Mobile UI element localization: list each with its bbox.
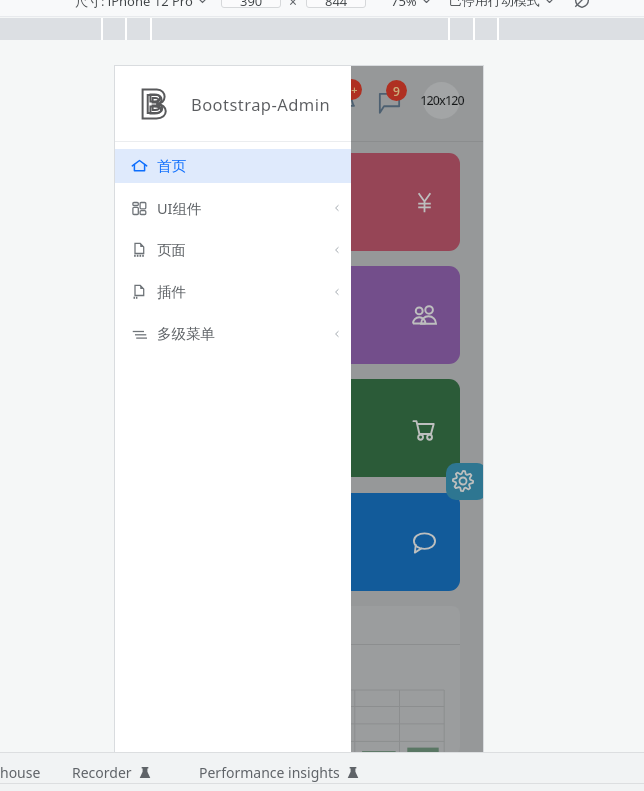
button[interactable]: [138, 606, 460, 755]
button[interactable]: [138, 153, 460, 251]
button[interactable]: Performance insights: [199, 763, 359, 782]
button[interactable]: Settings: [446, 463, 483, 500]
staticText: 插件: [157, 283, 186, 301]
staticText: 120x120: [420, 92, 464, 109]
button[interactable]: 插件: [115, 275, 351, 309]
staticText: 9+: [345, 82, 358, 97]
staticText: UI组件: [157, 198, 202, 218]
button[interactable]: Profile: [419, 78, 464, 123]
button[interactable]: 尺寸: iPhone 12 Pro: [75, 0, 207, 8]
button[interactable]: Throttling: [574, 0, 590, 8]
button[interactable]: 390: [221, 0, 281, 8]
button[interactable]: Messages: [370, 74, 418, 122]
staticText: 已停用行动模式: [449, 0, 540, 8]
staticText: ×: [289, 0, 298, 8]
button[interactable]: [138, 266, 460, 364]
button[interactable]: house: [0, 763, 41, 782]
button[interactable]: 75%: [391, 0, 431, 8]
staticText: 页面: [157, 241, 186, 259]
staticText: Recorder: [72, 763, 132, 782]
staticText: 75%: [391, 0, 417, 8]
button[interactable]: 已停用行动模式: [449, 0, 554, 8]
button[interactable]: Recorder: [72, 763, 151, 782]
button[interactable]: Bootstrap-Admin: [115, 66, 351, 141]
button[interactable]: 844: [306, 0, 366, 8]
staticText: 首页: [157, 157, 186, 175]
staticText: 390: [240, 0, 263, 8]
button[interactable]: Notifications: [326, 74, 374, 122]
button[interactable]: UI组件: [115, 191, 351, 225]
button[interactable]: 多级菜单: [115, 317, 351, 351]
button[interactable]: 首页: [115, 149, 351, 183]
staticText: 多级菜单: [157, 325, 215, 343]
staticText: Bootstrap-Admin: [191, 93, 331, 115]
button[interactable]: [138, 493, 460, 591]
staticText: 尺寸: iPhone 12 Pro: [75, 0, 193, 8]
staticText: 9: [393, 83, 400, 99]
staticText: house: [0, 763, 41, 782]
button[interactable]: [138, 379, 460, 477]
button[interactable]: 页面: [115, 233, 351, 267]
staticText: 844: [325, 0, 348, 8]
staticText: Performance insights: [199, 763, 340, 782]
